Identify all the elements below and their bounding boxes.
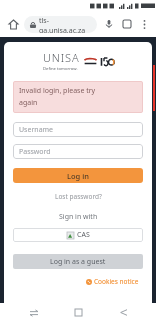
staticText: Cookies notice xyxy=(94,277,139,286)
button[interactable]: CAS xyxy=(13,228,143,242)
button[interactable]: Cookies notice xyxy=(13,277,143,286)
button[interactable]: tls-qa.unisa.ac.za xyxy=(24,16,97,33)
staticText: Username xyxy=(19,125,54,135)
button[interactable]: Username xyxy=(13,122,143,137)
button[interactable]: Voice search xyxy=(101,16,117,32)
button[interactable]: Password xyxy=(13,144,143,159)
staticText: Define tomorrow. xyxy=(43,66,78,72)
button[interactable]: Tabs xyxy=(119,16,135,32)
staticText: Invalid login, please try xyxy=(19,86,96,96)
staticText: again xyxy=(19,98,38,108)
button[interactable]: Recent apps xyxy=(23,303,45,322)
button[interactable]: Home xyxy=(5,16,21,32)
staticText: CAS xyxy=(77,230,90,240)
button[interactable]: Home xyxy=(67,303,89,322)
staticText: UNISA xyxy=(43,50,80,65)
button[interactable]: Lost password? xyxy=(51,190,106,203)
staticText: Lost password? xyxy=(55,192,102,201)
staticText: Sign in with xyxy=(59,212,98,222)
staticText: Log in xyxy=(67,171,89,181)
staticText: Password xyxy=(19,147,51,157)
button[interactable]: More options xyxy=(137,17,151,31)
staticText: Log in as a guest xyxy=(50,257,106,267)
button[interactable]: Back xyxy=(112,303,134,322)
button[interactable]: Log in xyxy=(13,168,143,183)
button[interactable]: Log in as a guest xyxy=(13,254,143,269)
staticText: tls-qa.unisa.ac.za xyxy=(39,16,91,33)
